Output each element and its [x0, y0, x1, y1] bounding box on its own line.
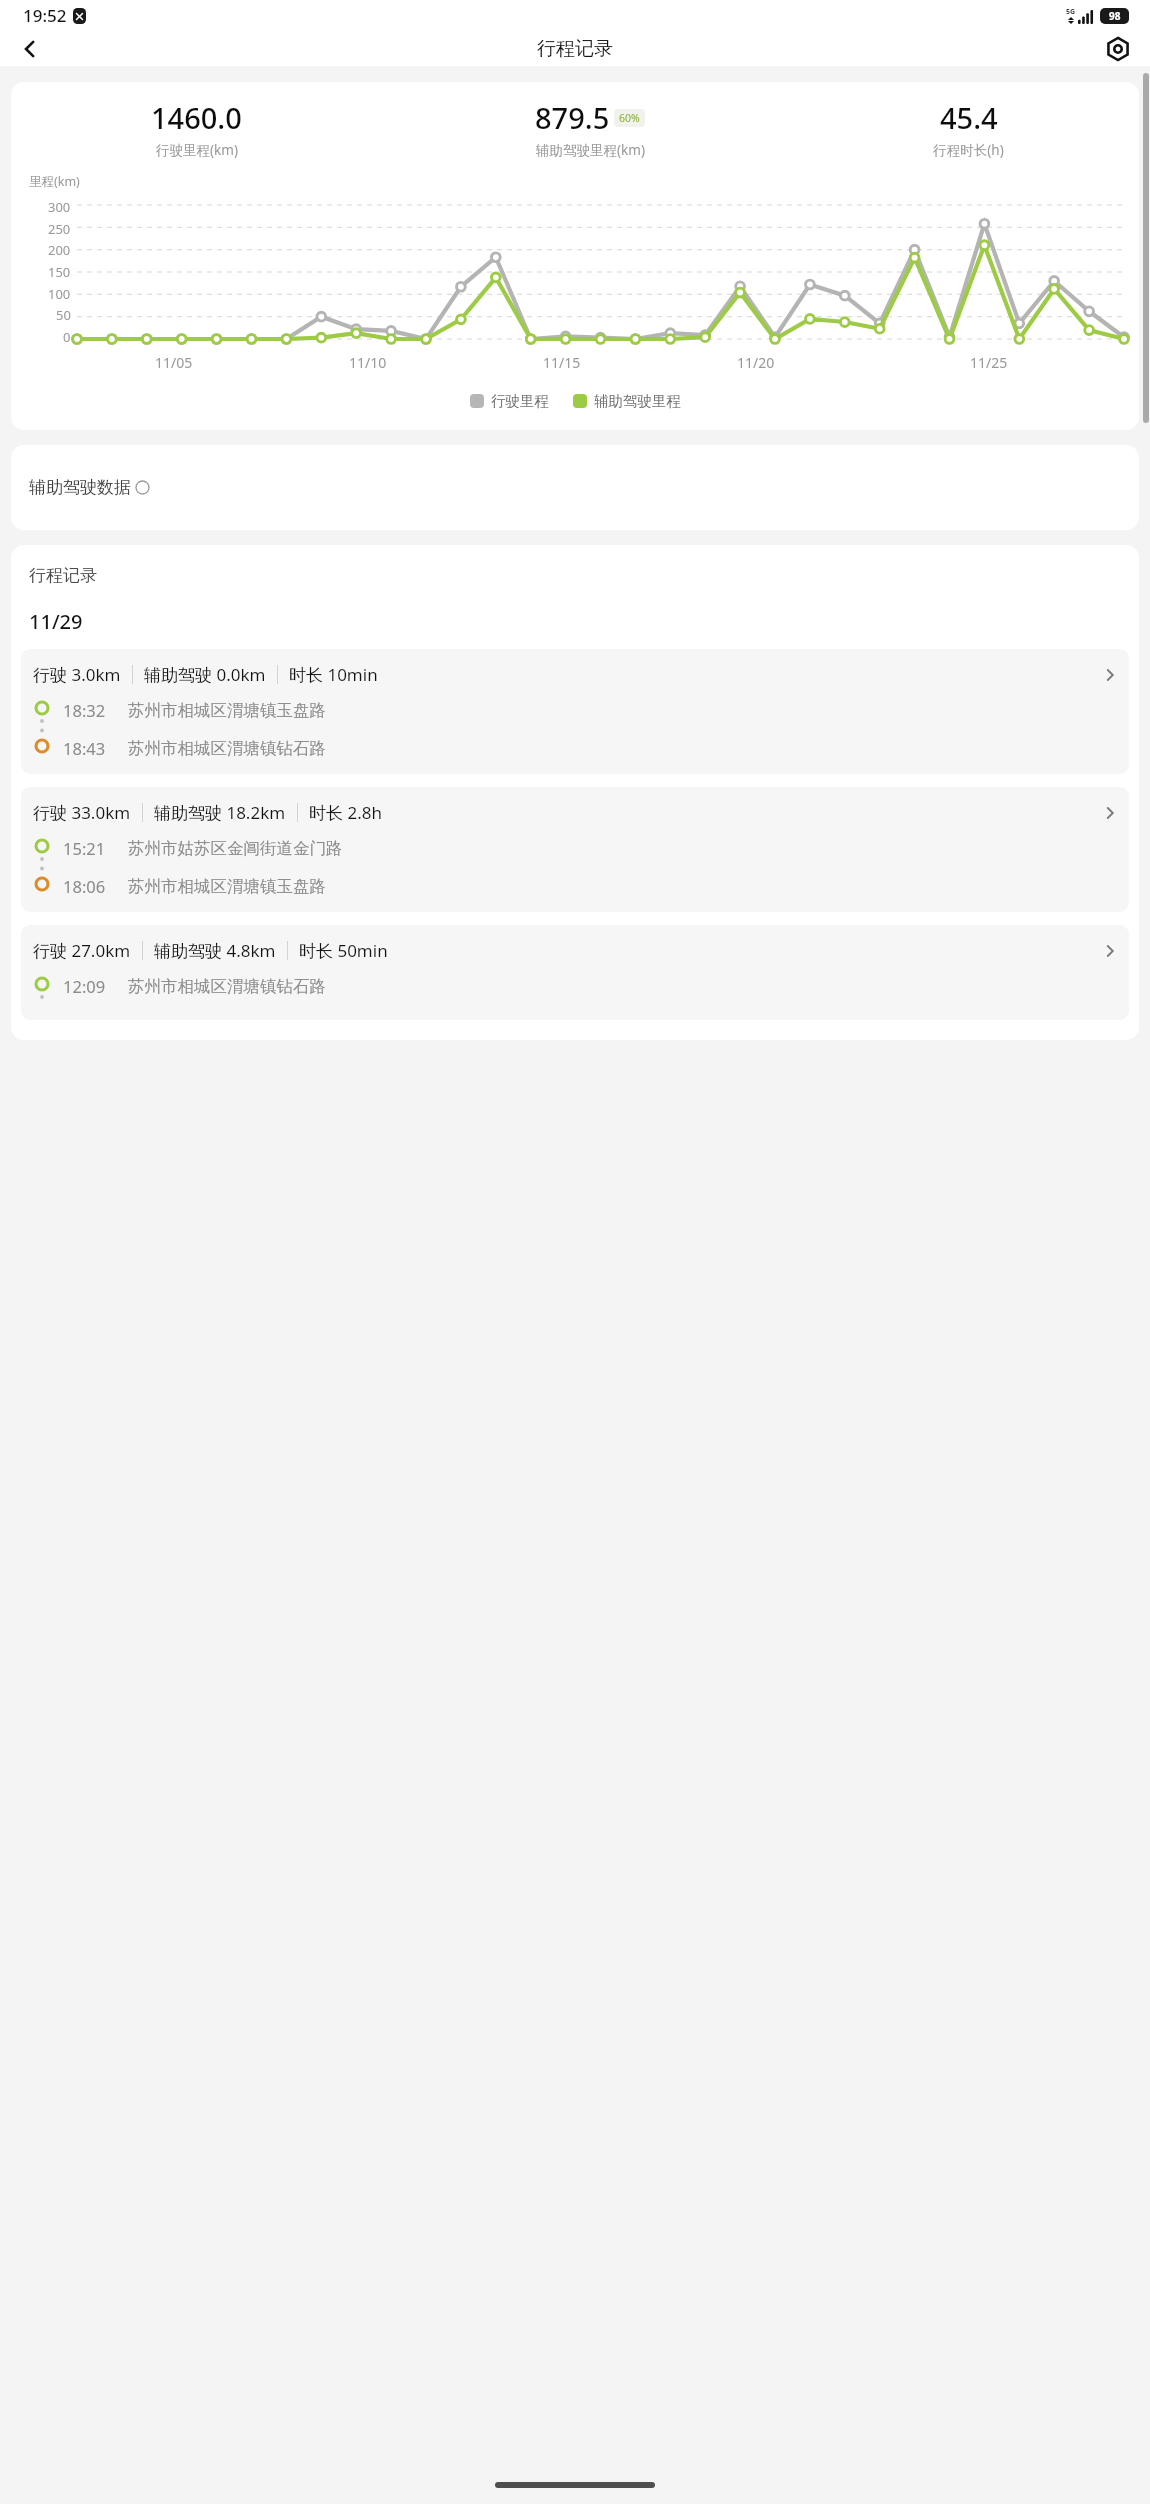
staticText: 11/05 [155, 353, 193, 372]
staticText: 苏州市相城区渭塘镇玉盘路 [128, 700, 326, 721]
staticText: 行程记录 [537, 37, 613, 61]
staticText: 行驶 33.0km [33, 801, 131, 824]
staticText: 98 [1109, 9, 1121, 23]
staticText: 12:09 [63, 975, 106, 997]
button[interactable]: 辅助驾驶数据 [11, 445, 1139, 530]
staticText: 11/15 [543, 353, 581, 372]
staticText: 辅助驾驶 18.2km [154, 801, 286, 824]
staticText: 行驶里程 [491, 392, 549, 410]
staticText: 18:32 [63, 699, 106, 721]
staticText: 时长 2.8h [309, 801, 382, 824]
staticText: 5G [1066, 7, 1076, 17]
staticText: 250 [48, 220, 71, 238]
staticText: 行驶 3.0km [33, 663, 121, 686]
staticText: 60% [619, 111, 640, 125]
staticText: 1460.0 [151, 98, 242, 137]
staticText: 18:06 [63, 875, 106, 897]
staticText: 苏州市姑苏区金阊街道金门路 [128, 838, 343, 859]
staticText: 11/25 [970, 353, 1008, 372]
staticText: 行驶里程(km) [156, 141, 238, 159]
staticText: 0 [63, 328, 71, 346]
button[interactable]: Back [8, 31, 52, 66]
staticText: 11/20 [737, 353, 775, 372]
staticText: 200 [48, 241, 71, 259]
staticText: 行驶 27.0km [33, 939, 131, 962]
staticText: 辅助驾驶 4.8km [154, 939, 276, 962]
staticText: 辅助驾驶 0.0km [144, 663, 266, 686]
staticText: 时长 50min [299, 939, 388, 962]
staticText: 150 [48, 263, 71, 281]
staticText: 879.5 [535, 98, 610, 137]
staticText: 19:52 [23, 4, 67, 27]
staticText: 18:43 [63, 737, 106, 759]
button[interactable]: 行驶 3.0km [21, 649, 1129, 774]
staticText: 时长 10min [289, 663, 378, 686]
staticText: 里程(km) [29, 173, 80, 190]
staticText: 辅助驾驶数据 [29, 477, 131, 498]
staticText: 辅助驾驶里程 [594, 392, 681, 410]
staticText: 50 [56, 306, 71, 324]
staticText: 15:21 [63, 837, 106, 859]
staticText: 行程时长(h) [933, 141, 1004, 159]
staticText: 300 [48, 198, 71, 216]
staticText: 苏州市相城区渭塘镇玉盘路 [128, 876, 326, 897]
button[interactable]: Settings [1096, 31, 1140, 66]
staticText: 苏州市相城区渭塘镇钻石路 [128, 738, 326, 759]
staticText: 11/10 [349, 353, 387, 372]
staticText: 行程记录 [29, 565, 97, 586]
staticText: 100 [48, 285, 71, 303]
staticText: 辅助驾驶里程(km) [536, 141, 645, 159]
staticText: 11/29 [29, 608, 83, 635]
staticText: 45.4 [940, 98, 998, 137]
button[interactable]: 行驶 33.0km [21, 787, 1129, 912]
button[interactable]: 行驶 27.0km [21, 925, 1129, 1020]
staticText: 苏州市相城区渭塘镇钻石路 [128, 976, 326, 997]
